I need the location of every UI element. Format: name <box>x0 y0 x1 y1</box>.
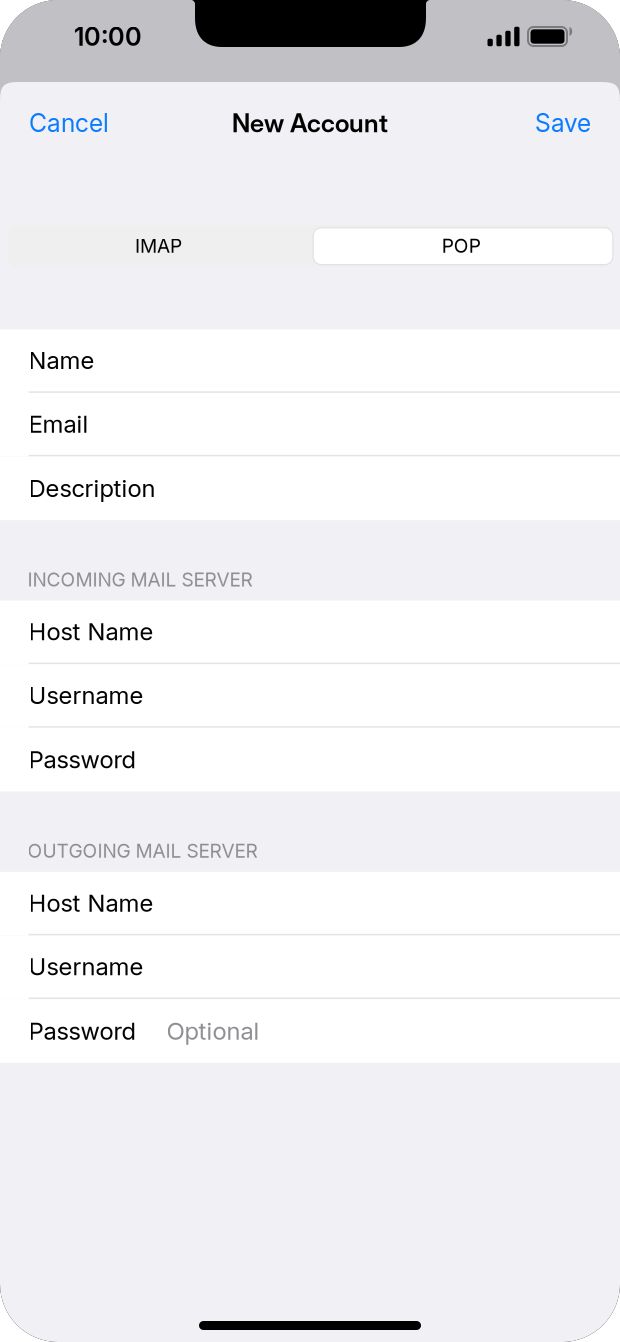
staticText: Username <box>28 681 143 710</box>
staticText: OUTGOING MAIL SERVER <box>28 839 258 862</box>
staticText: Password <box>28 1016 135 1045</box>
staticText: 10:00 <box>74 21 142 52</box>
button[interactable]: Description <box>0 456 620 520</box>
button[interactable]: Email <box>0 393 620 456</box>
staticText: Username <box>28 952 143 981</box>
staticText: Host Name <box>28 617 153 646</box>
button[interactable]: Host Name <box>0 601 620 664</box>
staticText: New Account <box>232 108 388 138</box>
staticText: Save <box>535 108 591 138</box>
staticText: Email <box>28 409 88 438</box>
button[interactable]: IMAP <box>7 224 310 267</box>
button[interactable]: Username <box>0 935 620 999</box>
button[interactable]: Username <box>0 664 620 728</box>
staticText: Host Name <box>28 888 153 917</box>
button[interactable]: Name <box>0 329 620 393</box>
staticText: Cancel <box>29 108 109 138</box>
button[interactable]: Cancel <box>0 82 125 152</box>
staticText: Optional <box>166 1016 259 1045</box>
staticText: Description <box>28 474 155 503</box>
button[interactable]: Save <box>519 82 620 152</box>
button[interactable]: Password <box>0 999 620 1063</box>
staticText: INCOMING MAIL SERVER <box>28 568 253 591</box>
staticText: POP <box>442 234 481 257</box>
button[interactable]: POP <box>310 224 612 267</box>
button[interactable]: Host Name <box>0 872 620 935</box>
staticText: Name <box>28 346 94 375</box>
button[interactable]: Password <box>0 728 620 791</box>
staticText: Password <box>28 745 135 774</box>
staticText: IMAP <box>135 234 182 257</box>
